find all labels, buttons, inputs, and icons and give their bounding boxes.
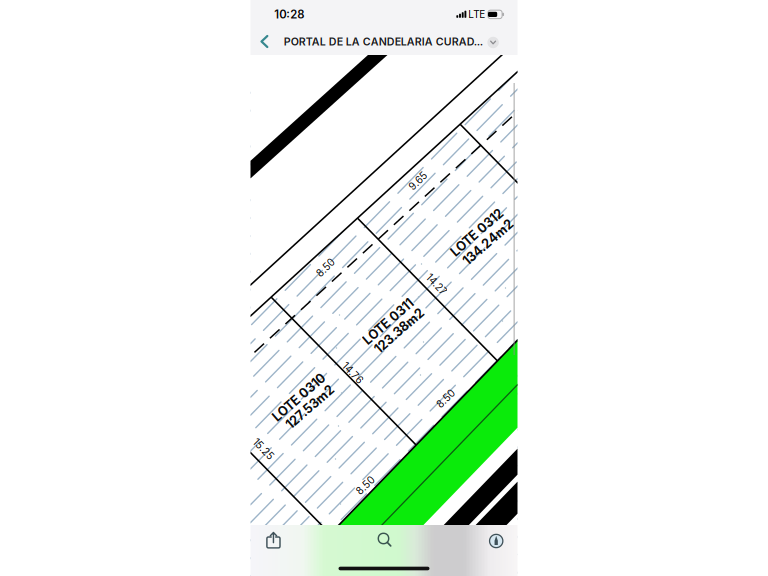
staticText: 134.24m2	[457, 234, 519, 250]
staticText: 8.50	[355, 479, 376, 492]
button[interactable]: Document options	[480, 29, 506, 55]
staticText: LOTE 0311	[357, 314, 419, 329]
button[interactable]: Search	[370, 526, 396, 552]
button[interactable]: Back	[250, 26, 280, 56]
staticText: 14.27	[424, 278, 449, 291]
staticText: 10:28	[274, 7, 304, 21]
staticText: 8.50	[315, 262, 336, 274]
staticText: 15.25	[251, 443, 276, 455]
staticText: PORTAL DE LA CANDELARIA CURAD...	[284, 35, 483, 48]
staticText: 8.50	[435, 393, 456, 405]
staticText: LTE	[468, 8, 485, 20]
staticText: 14.76	[340, 367, 365, 379]
staticText: 9.65	[408, 175, 429, 187]
button[interactable]: Share	[261, 526, 285, 552]
button[interactable]: Markup	[483, 527, 509, 553]
staticText: LOTE 0312	[444, 225, 509, 240]
staticText: 127.53m2	[280, 399, 339, 414]
staticText: LOTE 0310	[266, 389, 332, 405]
staticText: 123.38m2	[369, 323, 430, 338]
